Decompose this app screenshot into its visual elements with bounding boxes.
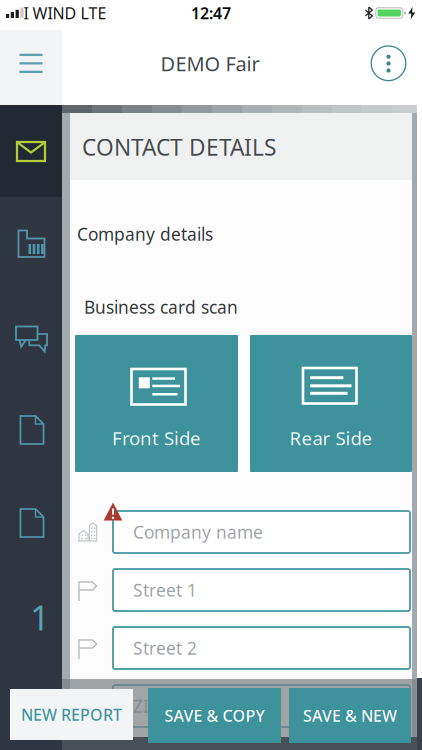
button[interactable]: NEW REPORT	[10, 689, 133, 740]
button[interactable]	[0, 309, 62, 369]
button[interactable]	[0, 213, 62, 273]
button[interactable]	[0, 493, 62, 553]
staticText: LTE	[80, 2, 106, 24]
button[interactable]	[0, 105, 62, 197]
button[interactable]: ZIP / City	[113, 685, 410, 727]
button[interactable]	[368, 43, 408, 83]
staticText: 1	[30, 594, 50, 640]
staticText: ZIP / City	[133, 694, 205, 717]
staticText: Rear Side	[289, 426, 372, 450]
staticText: Company name	[133, 520, 263, 543]
staticText: Business card scan	[84, 295, 238, 318]
button[interactable]: Company name	[113, 511, 410, 553]
staticText: CONTACT DETAILS	[82, 132, 276, 162]
staticText: Street 1	[133, 578, 197, 601]
button[interactable]	[0, 400, 62, 460]
button[interactable]: SAVE & COPY	[148, 688, 281, 743]
button[interactable]: 1	[20, 597, 60, 637]
staticText: NEW REPORT	[21, 704, 122, 725]
staticText: Front Side	[112, 426, 201, 450]
staticText: 12:47	[191, 2, 231, 24]
button[interactable]: Rear Side	[250, 335, 412, 472]
button[interactable]: SAVE & NEW	[289, 688, 411, 743]
button[interactable]: Front Side	[75, 335, 238, 472]
staticText: SAVE & NEW	[303, 705, 397, 726]
staticText: DEMO Fair	[160, 50, 259, 77]
staticText: SAVE & COPY	[164, 705, 264, 726]
staticText: Street 2	[133, 636, 197, 659]
staticText: Company details	[77, 222, 213, 245]
button[interactable]: Street 2	[113, 627, 410, 669]
staticText: I WIND	[23, 2, 76, 24]
button[interactable]	[9, 43, 53, 83]
button[interactable]: Street 1	[113, 569, 410, 611]
